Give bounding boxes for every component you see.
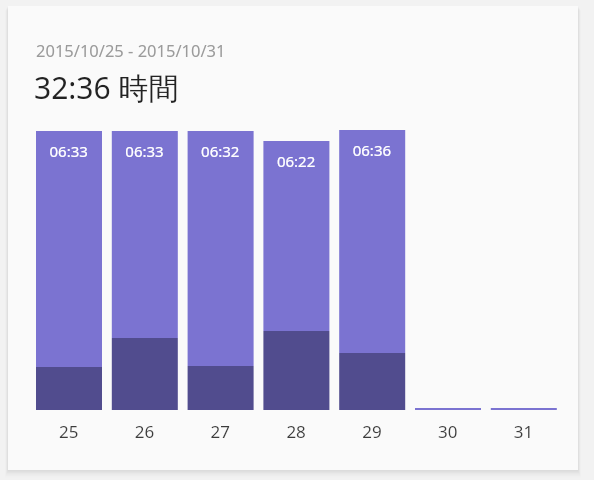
button[interactable]	[0, 0, 594, 480]
